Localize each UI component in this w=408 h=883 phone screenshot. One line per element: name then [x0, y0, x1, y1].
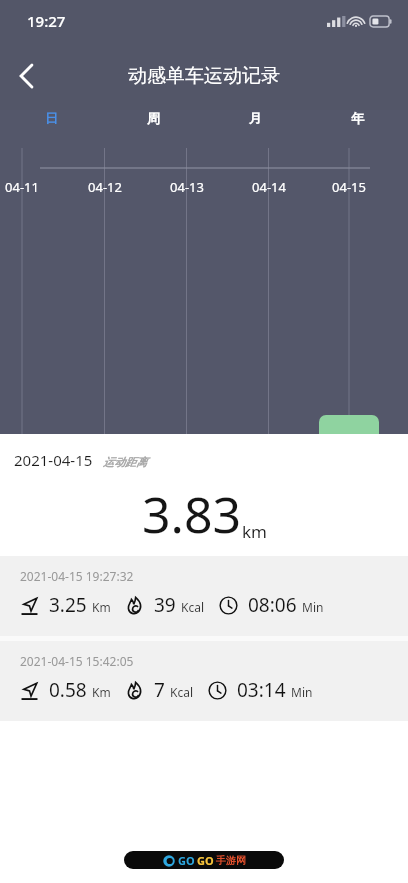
staticText: Min — [302, 599, 324, 615]
staticText: 年 — [351, 110, 364, 126]
staticText: 动感单车运动记录 — [128, 64, 280, 88]
other: Duration — [219, 596, 238, 615]
button[interactable]: 年 — [306, 110, 408, 126]
staticText: 04-13 — [170, 178, 204, 196]
staticText: GO — [178, 853, 195, 868]
staticText: 手游网 — [216, 854, 246, 867]
staticText: 04-15 — [332, 178, 366, 196]
staticText: 2021-04-15 — [14, 450, 93, 470]
button[interactable]: 2021-04-15 15:42:05 — [0, 641, 408, 721]
other: Duration — [208, 681, 227, 700]
staticText: 日 — [45, 110, 58, 126]
staticText: km — [242, 520, 267, 543]
staticText: 19:27 — [27, 11, 66, 31]
staticText: 03:14 — [237, 677, 286, 703]
staticText: 2021-04-15 15:42:05 — [20, 653, 134, 669]
staticText: 运动距离 — [103, 455, 147, 469]
staticText: 7 — [154, 677, 165, 703]
staticText: Km — [92, 684, 111, 700]
other: Calories — [125, 681, 144, 700]
staticText: 08:06 — [248, 592, 297, 618]
staticText: 04-14 — [252, 178, 286, 196]
staticText: 04-12 — [88, 178, 122, 196]
staticText: Min — [291, 684, 313, 700]
staticText: Km — [92, 599, 111, 615]
button[interactable]: 日 — [0, 110, 102, 126]
button[interactable]: 周 — [102, 110, 204, 126]
staticText: 3.25 — [49, 592, 87, 618]
staticText: 2021-04-15 19:27:32 — [20, 568, 134, 584]
button[interactable]: Back — [0, 50, 52, 102]
other: Calories — [125, 596, 144, 615]
staticText: 39 — [154, 592, 176, 618]
staticText: 3.83 — [142, 480, 242, 548]
staticText: GO — [197, 853, 214, 868]
staticText: 0.58 — [49, 677, 87, 703]
button[interactable]: 2021-04-15 19:27:32 — [0, 556, 408, 636]
staticText: 04-11 — [5, 178, 39, 196]
staticText: Kcal — [170, 684, 194, 700]
other: Distance — [20, 596, 39, 615]
button[interactable]: 月 — [204, 110, 306, 126]
other: Distance — [20, 681, 39, 700]
staticText: Kcal — [181, 599, 205, 615]
staticText: 周 — [147, 110, 160, 126]
staticText: 月 — [249, 110, 262, 126]
